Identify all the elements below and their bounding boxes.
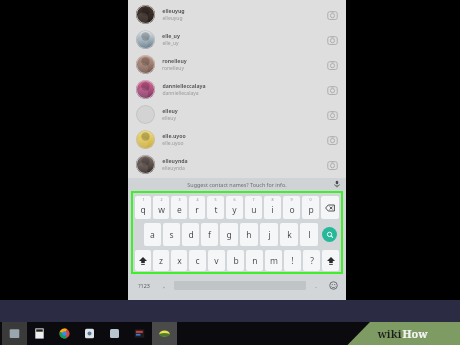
staticText: wiki <box>377 326 402 341</box>
button[interactable]: Voice input <box>332 179 342 189</box>
staticText: 9 <box>290 197 293 202</box>
button[interactable]: 4 <box>189 196 205 219</box>
staticText: s <box>169 229 174 241</box>
button[interactable]: j <box>260 223 278 246</box>
button[interactable]: m <box>265 250 282 271</box>
button[interactable]: v <box>208 250 225 271</box>
button[interactable]: dannielleccalaya <box>128 77 346 102</box>
button[interactable]: Emoji <box>324 278 342 293</box>
button[interactable]: Backspace <box>321 196 339 219</box>
staticText: 5 <box>214 197 217 202</box>
staticText: ?123 <box>138 282 150 289</box>
staticText: j <box>268 229 271 241</box>
staticText: d <box>188 229 194 241</box>
staticText: f <box>208 229 211 241</box>
staticText: x <box>177 255 182 267</box>
button[interactable]: d <box>182 223 199 246</box>
button[interactable]: ?123 <box>132 278 156 293</box>
button[interactable]: elle_uy <box>128 27 346 52</box>
staticText: elleuyug <box>162 7 185 14</box>
staticText: l <box>308 229 311 241</box>
staticText: w <box>158 204 165 216</box>
staticText: 8 <box>271 197 274 202</box>
staticText: 6 <box>233 197 236 202</box>
button[interactable]: Send camera message <box>322 80 342 100</box>
button[interactable]: wikiHow <box>152 322 177 345</box>
staticText: 2 <box>160 197 163 202</box>
button[interactable]: x <box>171 250 187 271</box>
staticText: n <box>252 255 258 267</box>
button[interactable]: f <box>201 223 218 246</box>
button[interactable]: l <box>300 223 318 246</box>
button[interactable]: 8 <box>264 196 281 219</box>
button[interactable]: Send camera message <box>322 130 342 150</box>
staticText: i <box>271 204 274 216</box>
button[interactable]: Chrome <box>52 322 77 345</box>
button[interactable]: n <box>246 250 263 271</box>
staticText: y <box>232 204 237 216</box>
staticText: ? <box>310 255 314 267</box>
staticText: q <box>140 204 146 216</box>
staticText: . <box>315 282 317 290</box>
button[interactable]: h <box>240 223 258 246</box>
button[interactable]: Send camera message <box>322 30 342 50</box>
button[interactable]: s <box>163 223 180 246</box>
button[interactable]: elleuynda <box>128 152 346 177</box>
button[interactable]: Send camera message <box>322 55 342 75</box>
staticText: m <box>270 255 278 267</box>
button[interactable]: 6 <box>226 196 243 219</box>
button[interactable]: k <box>280 223 298 246</box>
button[interactable]: elleuy <box>128 102 346 127</box>
button[interactable]: Notes <box>102 322 127 345</box>
button[interactable]: Send camera message <box>322 5 342 25</box>
button[interactable]: Photos <box>77 322 102 345</box>
staticText: 4 <box>196 197 199 202</box>
button[interactable]: ronelleuy <box>128 52 346 77</box>
button[interactable]: 5 <box>207 196 224 219</box>
staticText: dannielleccalaya <box>162 82 206 89</box>
staticText: How <box>402 326 428 341</box>
button[interactable]: Media <box>127 322 152 345</box>
button[interactable]: 9 <box>283 196 300 219</box>
button[interactable]: Files <box>2 322 27 345</box>
button[interactable]: b <box>227 250 244 271</box>
staticText: 0 <box>309 197 312 202</box>
button[interactable]: z <box>153 250 169 271</box>
button[interactable]: elleuyug <box>128 2 346 27</box>
button[interactable]: Send camera message <box>322 155 342 175</box>
button[interactable]: Calculator <box>27 322 52 345</box>
button[interactable]: , <box>156 278 172 293</box>
button[interactable]: Suggest contact names? Touch for info. <box>128 178 346 190</box>
button[interactable]: ? <box>303 250 320 271</box>
staticText: c <box>195 255 200 267</box>
staticText: elleuynda <box>162 165 185 172</box>
button[interactable]: ! <box>284 250 301 271</box>
button[interactable]: 0 <box>302 196 319 219</box>
button[interactable]: 3 <box>171 196 187 219</box>
staticText: 7 <box>252 197 255 202</box>
button[interactable]: c <box>189 250 206 271</box>
button[interactable]: 1 <box>135 196 151 219</box>
staticText: p <box>308 204 314 216</box>
staticText: elle.uyoo <box>162 132 186 139</box>
button[interactable]: a <box>144 223 161 246</box>
staticText: elle.uyoo <box>162 140 184 147</box>
button[interactable]: 2 <box>153 196 169 219</box>
button[interactable]: 7 <box>245 196 262 219</box>
button[interactable]: Search <box>320 223 339 246</box>
button[interactable]: Shift <box>322 250 339 271</box>
staticText: b <box>233 255 239 267</box>
staticText: u <box>251 204 257 216</box>
staticText: g <box>226 229 232 241</box>
button[interactable]: Send camera message <box>322 105 342 125</box>
staticText: 1 <box>142 197 145 202</box>
staticText: z <box>159 255 163 267</box>
button[interactable]: elle.uyoo <box>128 127 346 152</box>
staticText: elle_uy <box>162 32 180 39</box>
staticText: ronelleuy <box>162 65 184 72</box>
button[interactable]: Shift <box>135 250 151 271</box>
button[interactable]: g <box>220 223 238 246</box>
staticText: e <box>177 204 182 216</box>
